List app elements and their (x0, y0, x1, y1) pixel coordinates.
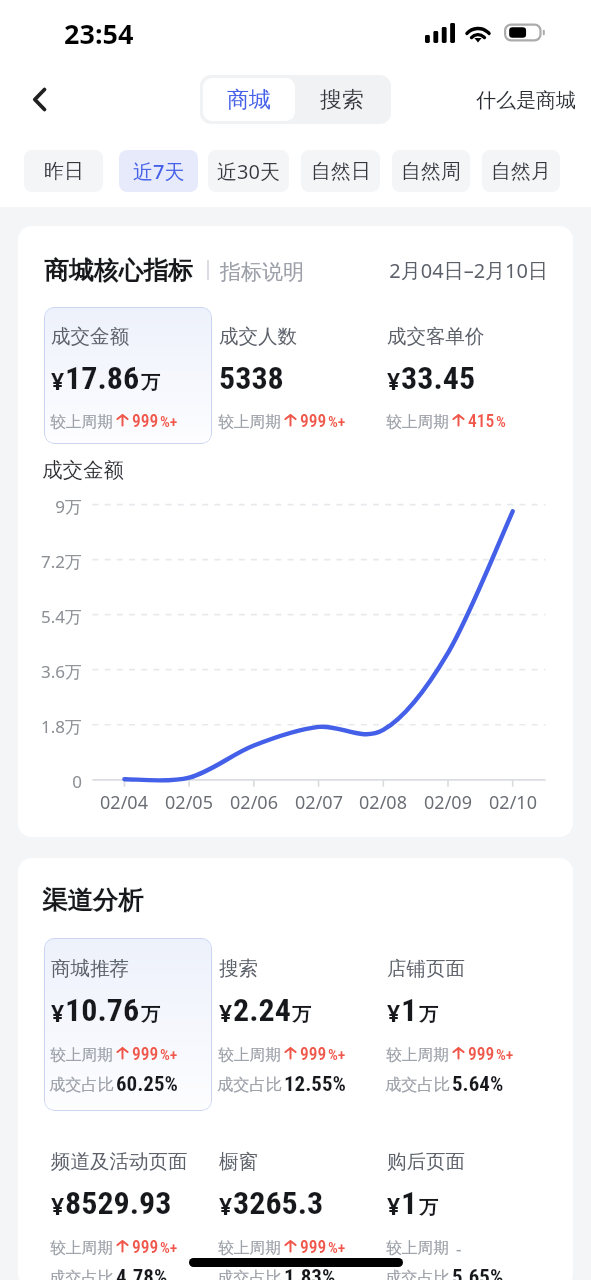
staticText: 万 (141, 371, 160, 395)
staticText: 999 (468, 1044, 495, 1064)
staticText: 2月04日–2月10日 (373, 257, 548, 284)
staticText: ¥ (387, 997, 401, 1028)
staticText: 23:54 (64, 15, 134, 52)
staticText: 成交占比 (49, 1267, 114, 1280)
staticText: 1 (401, 1184, 418, 1222)
button[interactable]: 自然月 (482, 150, 560, 192)
button[interactable]: 成交金额 (44, 307, 212, 444)
staticText: 店铺页面 (387, 956, 465, 981)
staticText: 渠道分析 (42, 885, 144, 917)
staticText: 999 (132, 411, 159, 431)
staticText: 自然月 (491, 159, 551, 184)
staticText: 较上周期 (50, 412, 114, 432)
staticText: ¥ (51, 997, 65, 1028)
staticText: 较上周期 (218, 1045, 282, 1065)
staticText: ¥ (219, 1190, 233, 1221)
button[interactable]: 成交客单价 (380, 307, 548, 444)
staticText: 2.24 (233, 991, 291, 1029)
button[interactable]: Back (16, 76, 62, 122)
staticText: 近30天 (217, 158, 280, 185)
button[interactable]: 自然周 (392, 150, 470, 192)
staticText: 自然周 (401, 159, 461, 184)
staticText: 12.55% (284, 1072, 347, 1097)
staticText: 33.45 (401, 359, 476, 397)
staticText: ¥ (51, 365, 65, 396)
staticText: 较上周期 (50, 1045, 114, 1065)
button[interactable]: 近7天 (119, 150, 198, 192)
staticText: %+ (160, 1239, 178, 1257)
staticText: 成交占比 (49, 1074, 114, 1094)
staticText: 较上周期 (386, 412, 450, 432)
staticText: 02/09 (413, 790, 483, 815)
button[interactable]: 搜索 (212, 938, 380, 1111)
staticText: 近7天 (133, 158, 185, 185)
staticText: 02/05 (154, 790, 224, 815)
button[interactable]: 商城 (203, 78, 295, 121)
staticText: 商城 (227, 86, 271, 114)
staticText: 商城核心指标 (44, 255, 193, 286)
staticText: 5.65% (452, 1265, 504, 1280)
staticText: 万 (141, 1003, 160, 1027)
staticText: 3265.3 (233, 1184, 324, 1222)
staticText: % (496, 413, 506, 431)
staticText: 10.76 (65, 991, 140, 1029)
staticText: %+ (328, 1046, 346, 1064)
staticText: 3.6万 (18, 660, 82, 683)
staticText: 5.4万 (18, 605, 82, 628)
staticText: 02/07 (284, 790, 354, 815)
staticText: 较上周期 (50, 1238, 114, 1258)
staticText: 02/10 (478, 790, 548, 815)
staticText: ¥ (387, 1190, 401, 1221)
staticText: 成交占比 (385, 1267, 450, 1280)
staticText: 17.86 (65, 359, 140, 397)
staticText: 1.8万 (18, 715, 82, 738)
button[interactable]: 指标说明 (216, 254, 308, 290)
button[interactable]: 店铺页面 (380, 938, 548, 1111)
staticText: %+ (328, 413, 346, 431)
staticText: 60.25% (116, 1072, 179, 1097)
button[interactable]: 购后页面 (380, 1131, 548, 1280)
staticText: 7.2万 (18, 550, 82, 573)
staticText: 999 (300, 1237, 327, 1257)
button[interactable]: 近30天 (208, 150, 289, 192)
button[interactable]: 搜索 (295, 78, 388, 121)
staticText: 较上周期 (218, 1238, 282, 1258)
staticText: 搜索 (219, 956, 258, 981)
staticText: 频道及活动页面 (51, 1149, 188, 1174)
staticText: 万 (419, 1196, 438, 1220)
staticText: 1.83% (284, 1265, 336, 1280)
staticText: 成交客单价 (387, 324, 485, 349)
staticText: %+ (160, 1046, 178, 1064)
staticText: 万 (419, 1003, 438, 1027)
staticText: 成交占比 (217, 1267, 282, 1280)
staticText: 5338 (219, 359, 284, 397)
staticText: 购后页面 (387, 1149, 465, 1174)
staticText: 成交占比 (385, 1074, 450, 1094)
button[interactable]: 频道及活动页面 (44, 1131, 212, 1280)
staticText: 02/04 (89, 790, 159, 815)
button[interactable]: 橱窗 (212, 1131, 380, 1280)
button[interactable]: 什么是商城 (469, 79, 583, 122)
staticText: 万 (292, 1003, 311, 1027)
staticText: 1 (401, 991, 418, 1029)
staticText: 商城推荐 (51, 956, 129, 981)
staticText: ¥ (219, 997, 233, 1028)
staticText: 搜索 (320, 86, 364, 114)
staticText: 9万 (18, 495, 82, 518)
staticText: 成交金额 (51, 324, 129, 349)
staticText: 8529.93 (65, 1184, 172, 1222)
button[interactable]: 自然日 (301, 150, 380, 192)
staticText: 02/08 (348, 790, 418, 815)
button[interactable]: 商城推荐 (44, 938, 212, 1111)
staticText: ¥ (51, 1190, 65, 1221)
button[interactable]: 成交人数 (212, 307, 380, 444)
button[interactable]: 昨日 (24, 150, 103, 192)
staticText: 999 (132, 1044, 159, 1064)
staticText: 999 (300, 411, 327, 431)
staticText: 02/06 (219, 790, 289, 815)
staticText: 5.64% (452, 1072, 504, 1097)
staticText: 橱窗 (219, 1149, 258, 1174)
staticText: %+ (328, 1239, 346, 1257)
staticText: 较上周期 (218, 412, 282, 432)
staticText: 成交占比 (217, 1074, 282, 1094)
